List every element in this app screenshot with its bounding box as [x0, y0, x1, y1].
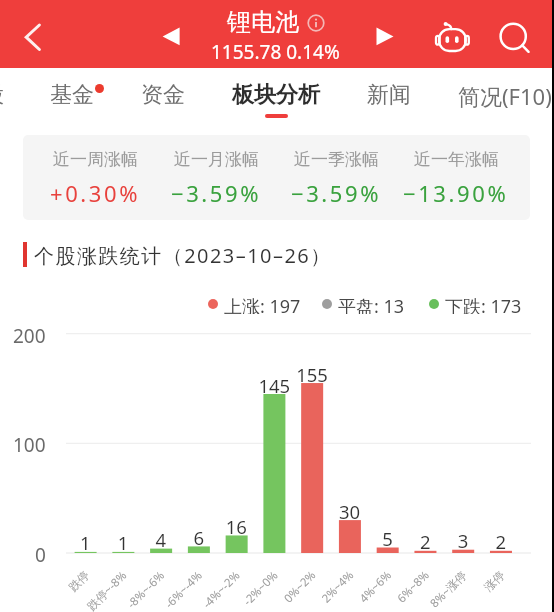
button[interactable]: 下跌: 173: [429, 294, 522, 314]
button[interactable]: 板块分析: [230, 68, 322, 130]
button[interactable]: Search: [489, 13, 535, 59]
button[interactable]: Back: [12, 14, 56, 58]
staticText: 近一月涨幅: [174, 149, 259, 170]
button[interactable]: Next sector: [368, 20, 402, 54]
staticText: 1155.78 0.14%: [211, 39, 340, 64]
staticText: −3.59%: [171, 178, 262, 208]
button[interactable]: 锂电池: [185, 0, 366, 64]
staticText: 平盘: 13: [338, 294, 405, 314]
staticText: 上涨: 197: [224, 294, 301, 314]
button[interactable]: 基金: [47, 68, 97, 130]
staticText: 下跌: 173: [445, 294, 522, 314]
button[interactable]: 个股涨跌统计（2023–10–26）: [23, 242, 332, 267]
button[interactable]: Previous sector: [154, 20, 188, 54]
button[interactable]: 新闻: [364, 68, 414, 130]
staticText: 近一季涨幅: [294, 149, 379, 170]
button[interactable]: 资金: [138, 68, 188, 130]
staticText: 锂电池: [227, 7, 299, 37]
staticText: 简况(F10): [458, 81, 552, 111]
staticText: 资金: [141, 81, 185, 109]
button[interactable]: 个股: [0, 68, 7, 130]
staticText: +0.30%: [50, 178, 141, 208]
button[interactable]: 平盘: 13: [322, 294, 405, 314]
staticText: 近一周涨幅: [53, 149, 138, 170]
button[interactable]: 简况(F10): [455, 68, 554, 130]
staticText: −3.59%: [291, 178, 382, 208]
staticText: 板块分析: [232, 81, 320, 109]
staticText: 基金: [50, 81, 94, 109]
staticText: 近一年涨幅: [414, 149, 499, 170]
staticText: −13.90%: [403, 178, 509, 208]
button[interactable]: AI assistant: [428, 12, 474, 58]
button[interactable]: 上涨: 197: [208, 294, 301, 314]
staticText: 个股: [0, 81, 4, 109]
staticText: 新闻: [367, 81, 411, 109]
staticText: 个股涨跌统计（2023–10–26）: [34, 242, 332, 267]
